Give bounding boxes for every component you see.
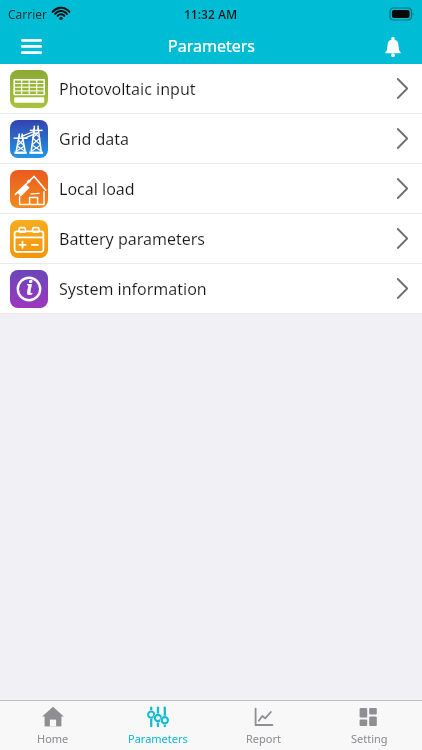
staticText: Carrier: [8, 6, 48, 22]
button[interactable]: Parameters: [105, 701, 210, 750]
button[interactable]: [14, 31, 48, 61]
button[interactable]: Home: [0, 701, 105, 750]
staticText: Battery parameters: [59, 228, 206, 250]
staticText: Parameters: [168, 35, 255, 57]
button[interactable]: Photovoltaic input: [0, 64, 422, 113]
staticText: Local load: [59, 178, 135, 200]
staticText: 11:32 AM: [184, 6, 238, 22]
button[interactable]: [378, 31, 408, 61]
button[interactable]: Report: [210, 701, 316, 750]
button[interactable]: Setting: [316, 701, 422, 750]
staticText: Setting: [351, 731, 388, 746]
staticText: Home: [37, 731, 69, 746]
staticText: Parameters: [128, 731, 188, 746]
staticText: i: [26, 275, 33, 301]
button[interactable]: Battery parameters: [0, 214, 422, 263]
button[interactable]: i: [0, 264, 422, 313]
button[interactable]: Local load: [0, 164, 422, 213]
staticText: Grid data: [59, 128, 129, 150]
staticText: Report: [246, 731, 281, 746]
staticText: System information: [59, 278, 207, 300]
button[interactable]: Grid data: [0, 114, 422, 163]
staticText: Photovoltaic input: [59, 78, 196, 100]
